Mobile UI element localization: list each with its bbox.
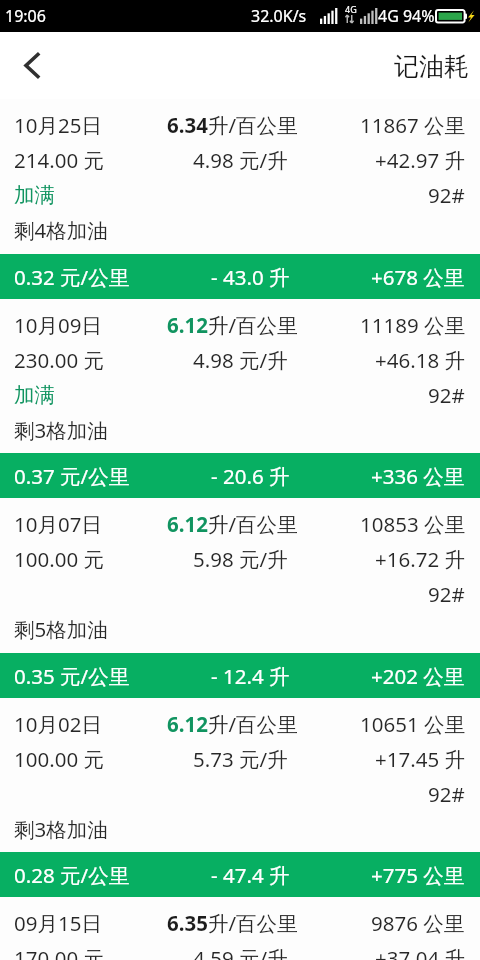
button[interactable]: 0.37 元/公里 — [0, 453, 480, 498]
staticText: 6.12升/百公里 — [167, 710, 298, 738]
staticText: 0.32 元/公里 — [14, 263, 130, 291]
staticText: 剩4格加油 — [14, 216, 108, 244]
staticText: 10月07日 — [14, 510, 102, 538]
staticText: 剩3格加油 — [14, 416, 108, 444]
staticText: 32.0K/s — [251, 5, 307, 27]
staticText: - 20.6 升 — [211, 462, 290, 490]
staticText: 09月15日 — [14, 909, 102, 937]
staticText: 0.28 元/公里 — [14, 861, 130, 889]
staticText: 92# — [428, 580, 465, 608]
button[interactable]: 0.35 元/公里 — [0, 653, 480, 698]
staticText: 4G — [345, 3, 357, 15]
staticText: 100.00 元 — [14, 745, 104, 773]
staticText: +42.97 升 — [375, 146, 465, 174]
staticText: +37.04 升 — [375, 944, 465, 960]
staticText: 5.73 元/升 — [193, 745, 288, 773]
staticText: 11189 公里 — [360, 311, 465, 339]
staticText: 加满 — [14, 182, 55, 208]
button[interactable]: 10月02日 — [0, 698, 480, 852]
staticText: 10651 公里 — [360, 710, 465, 738]
staticText: 100.00 元 — [14, 545, 104, 573]
staticText: 剩3格加油 — [14, 815, 108, 843]
staticText: 170.00 元 — [14, 944, 104, 960]
button[interactable]: 0.28 元/公里 — [0, 852, 480, 897]
button[interactable]: 10月07日 — [0, 498, 480, 653]
staticText: - 43.0 升 — [211, 263, 290, 291]
staticText: 剩5格加油 — [14, 615, 108, 643]
staticText: 6.12升/百公里 — [167, 510, 298, 538]
staticText: 记油耗 — [394, 51, 469, 82]
staticText: +202 公里 — [371, 662, 465, 690]
staticText: 4.59 元/升 — [193, 944, 288, 960]
staticText: 230.00 元 — [14, 346, 104, 374]
staticText: 5.98 元/升 — [193, 545, 288, 573]
staticText: 10月09日 — [14, 311, 102, 339]
staticText: 9876 公里 — [371, 909, 465, 937]
staticText: - 47.4 升 — [211, 861, 290, 889]
staticText: 0.37 元/公里 — [14, 462, 130, 490]
staticText: 11867 公里 — [360, 111, 465, 139]
staticText: 92# — [428, 181, 465, 209]
staticText: 6.34升/百公里 — [167, 111, 298, 139]
staticText: +336 公里 — [371, 462, 465, 490]
staticText: 10853 公里 — [360, 510, 465, 538]
staticText: 4.98 元/升 — [193, 346, 288, 374]
staticText: 19:06 — [5, 5, 46, 27]
staticText: +46.18 升 — [375, 346, 465, 374]
button[interactable]: Back — [0, 32, 62, 99]
staticText: 10月25日 — [14, 111, 102, 139]
staticText: 4.98 元/升 — [193, 146, 288, 174]
staticText: 0.35 元/公里 — [14, 662, 130, 690]
staticText: 10月02日 — [14, 710, 102, 738]
staticText: 6.35升/百公里 — [167, 909, 298, 937]
staticText: 92# — [428, 381, 465, 409]
staticText: +775 公里 — [371, 861, 465, 889]
staticText: 6.12升/百公里 — [167, 311, 298, 339]
button[interactable]: 0.32 元/公里 — [0, 254, 480, 299]
staticText: +678 公里 — [371, 263, 465, 291]
button[interactable]: 10月09日 — [0, 299, 480, 453]
staticText: 214.00 元 — [14, 146, 104, 174]
staticText: +16.72 升 — [375, 545, 465, 573]
staticText: 92# — [428, 780, 465, 808]
button[interactable]: 10月25日 — [0, 99, 480, 254]
button[interactable]: 09月15日 — [0, 897, 480, 960]
staticText: 加满 — [14, 382, 55, 408]
staticText: 4G 94% — [378, 5, 435, 27]
staticText: +17.45 升 — [375, 745, 465, 773]
staticText: - 12.4 升 — [211, 662, 290, 690]
